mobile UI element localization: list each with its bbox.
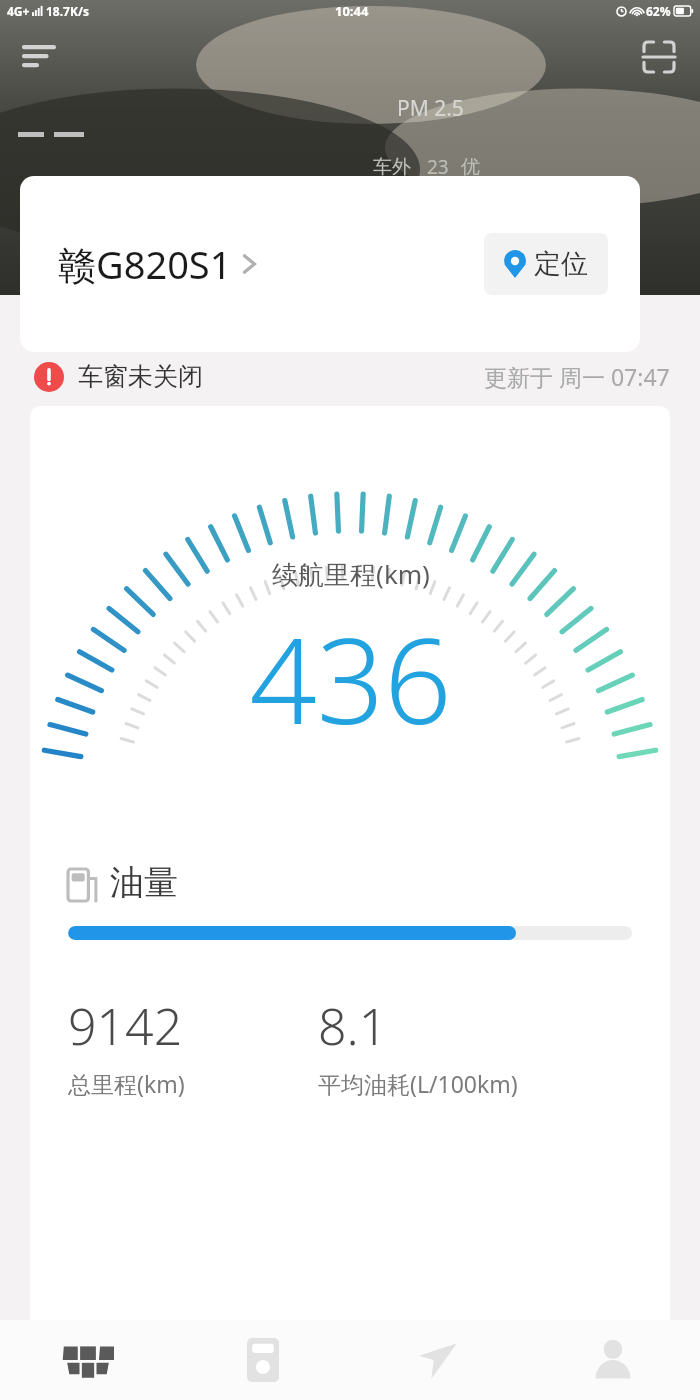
- button[interactable]: Menu: [16, 34, 62, 80]
- staticText: PM 2.5: [397, 94, 464, 123]
- staticText: 9142: [68, 992, 183, 1060]
- button[interactable]: Profile: [525, 1320, 700, 1400]
- staticText: 4G+: [7, 3, 30, 19]
- staticText: 8.1: [318, 992, 388, 1060]
- button[interactable]: 赣G820S1: [58, 238, 258, 290]
- staticText: 23: [427, 154, 449, 180]
- button[interactable]: Navigation: [350, 1320, 525, 1400]
- staticText: 车外: [373, 155, 411, 179]
- staticText: 18.7K/s: [46, 3, 89, 19]
- staticText: 定位: [534, 247, 588, 281]
- button[interactable]: 定位: [484, 233, 608, 295]
- button[interactable]: Scan: [636, 34, 682, 80]
- staticText: 更新于 周一 07:47: [484, 361, 670, 392]
- button[interactable]: Dashboard: [0, 1320, 175, 1400]
- staticText: 平均油耗(L/100km): [318, 1068, 518, 1099]
- staticText: 续航里程(km): [272, 556, 430, 592]
- button[interactable]: Remote: [175, 1320, 350, 1400]
- staticText: 62%: [646, 3, 671, 19]
- staticText: 赣G820S1: [58, 238, 232, 290]
- staticText: 车窗未关闭: [78, 361, 203, 392]
- staticText: 10:44: [335, 2, 369, 20]
- staticText: 436: [249, 598, 452, 759]
- staticText: 总里程(km): [68, 1068, 185, 1099]
- staticText: 优: [461, 155, 480, 179]
- staticText: 油量: [110, 861, 178, 904]
